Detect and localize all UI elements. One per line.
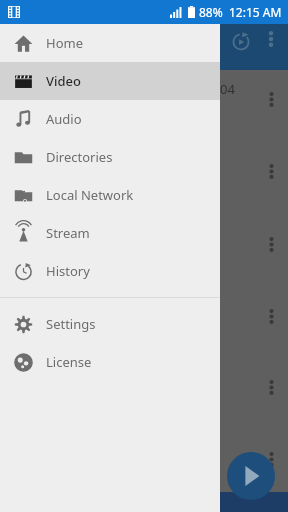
staticText: Settings (46, 315, 96, 333)
button[interactable]: Item options (256, 229, 286, 259)
button[interactable]: Item options (256, 444, 286, 474)
button[interactable]: History (224, 24, 258, 58)
staticText: License (46, 353, 92, 371)
button[interactable]: More options (256, 24, 286, 54)
button[interactable]: Home (0, 24, 220, 62)
button[interactable]: Audio (0, 100, 220, 138)
staticText: Video (46, 72, 81, 90)
staticText: History (46, 262, 90, 280)
button[interactable]: Local Network (0, 176, 220, 214)
button[interactable]: Stream (0, 214, 220, 252)
staticText: Local Network (46, 186, 134, 204)
button[interactable]: Play (227, 452, 275, 500)
button[interactable]: History (0, 252, 220, 290)
staticText: Directories (46, 148, 113, 166)
button[interactable]: Settings (0, 305, 220, 343)
button[interactable]: Now playing (220, 492, 288, 512)
button[interactable]: Item options (256, 84, 286, 114)
staticText: Audio (46, 110, 82, 128)
button[interactable]: Video (0, 62, 220, 100)
button[interactable]: Item options (256, 372, 286, 402)
button[interactable]: Item options (256, 156, 286, 186)
staticText: Home (46, 34, 83, 52)
staticText: Stream (46, 224, 90, 242)
button[interactable]: License (0, 343, 220, 381)
staticText: 04 (220, 80, 235, 98)
staticText: 88% (199, 4, 223, 20)
button[interactable]: Item options (256, 301, 286, 331)
staticText: 12:15 AM (229, 4, 282, 20)
button[interactable]: Directories (0, 138, 220, 176)
